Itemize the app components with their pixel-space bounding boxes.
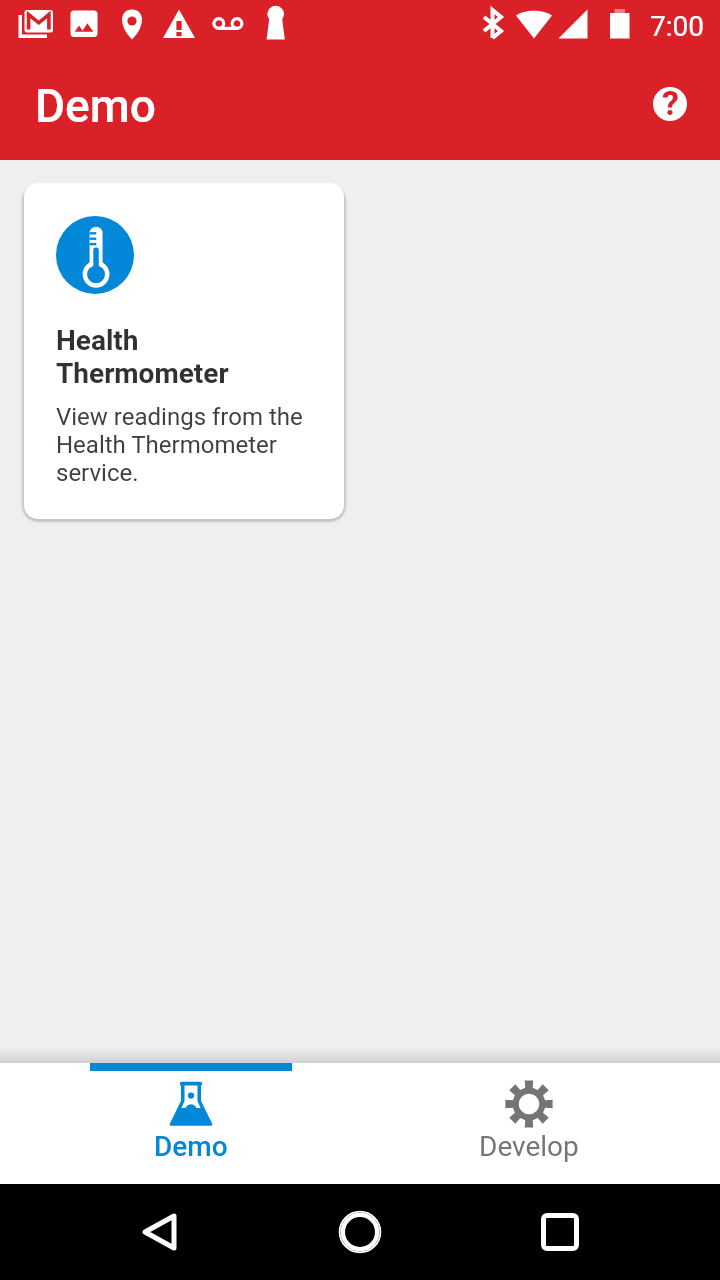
staticText: 7:00 (650, 10, 704, 43)
button[interactable]: Back (120, 1192, 200, 1272)
button[interactable]: Help (634, 68, 706, 140)
staticText: Demo (154, 1130, 228, 1163)
staticText: Demo (35, 79, 156, 133)
staticText: View readings from the Health Thermomete… (56, 403, 312, 487)
button[interactable]: Home (320, 1192, 400, 1272)
button[interactable]: Health Thermometer (24, 183, 344, 519)
button[interactable]: Recents (520, 1192, 600, 1272)
staticText: Develop (479, 1130, 579, 1163)
button[interactable]: Demo (22, 1063, 360, 1184)
staticText: Health Thermometer (56, 324, 229, 390)
button[interactable]: Develop (360, 1063, 698, 1184)
staticText: ? (662, 83, 679, 123)
